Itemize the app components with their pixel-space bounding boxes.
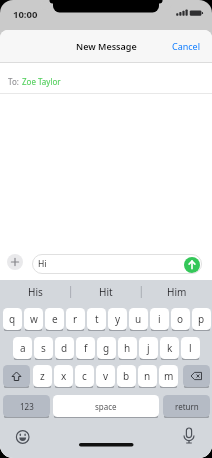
staticText: m (164, 369, 174, 383)
staticText: New Message (76, 40, 137, 52)
button[interactable]: q (3, 308, 22, 330)
staticText: u (135, 312, 142, 326)
staticText: g (103, 341, 110, 355)
button[interactable] (184, 257, 200, 273)
button[interactable]: His (0, 280, 70, 304)
staticText: h (124, 341, 131, 355)
button[interactable]: p (192, 308, 211, 330)
button[interactable]: g (97, 337, 116, 359)
staticText: e (52, 312, 58, 326)
button[interactable]: n (138, 365, 157, 387)
button[interactable]: v (96, 365, 115, 387)
button[interactable]: m (159, 365, 178, 387)
button[interactable]: 123 (3, 395, 50, 417)
staticText: w (30, 312, 38, 326)
staticText: c (82, 369, 87, 383)
button[interactable]: s (34, 337, 53, 359)
staticText: d (61, 341, 68, 355)
staticText: s (41, 341, 46, 355)
staticText: Him (167, 285, 187, 299)
staticText: l (189, 341, 192, 355)
staticText: x (61, 369, 67, 383)
button[interactable]: o (171, 308, 190, 330)
staticText: 123 (20, 401, 34, 412)
button[interactable] (183, 365, 210, 387)
button[interactable]: k (160, 337, 179, 359)
button[interactable]: c (75, 365, 94, 387)
staticText: n (144, 369, 151, 383)
staticText: f (84, 341, 88, 355)
button[interactable]: a (13, 337, 32, 359)
button[interactable]: space (53, 395, 159, 417)
staticText: v (103, 369, 109, 383)
staticText: return (175, 401, 199, 412)
staticText: b (123, 369, 130, 383)
button[interactable]: r (66, 308, 85, 330)
button[interactable] (7, 254, 23, 270)
staticText: space (95, 401, 117, 412)
staticText: r (73, 312, 78, 326)
staticText: Cancel (172, 40, 201, 52)
staticText: p (198, 312, 205, 326)
staticText: Hi (38, 258, 47, 270)
button[interactable]: Him (141, 280, 212, 304)
button[interactable]: f (76, 337, 95, 359)
staticText: 10:00 (13, 8, 38, 21)
staticText: Zoe Taylor (22, 76, 61, 87)
staticText: j (147, 341, 150, 355)
button[interactable]: Hi (32, 254, 202, 274)
button[interactable]: w (24, 308, 43, 330)
staticText: q (9, 312, 16, 326)
button[interactable]: b (117, 365, 136, 387)
staticText: i (158, 312, 161, 326)
staticText: His (28, 285, 43, 299)
button[interactable]: Hit (70, 280, 141, 304)
staticText: a (20, 341, 26, 355)
staticText: To: (8, 76, 19, 87)
button[interactable]: x (54, 365, 73, 387)
staticText: y (115, 312, 121, 326)
button[interactable]: h (118, 337, 137, 359)
button[interactable]: d (55, 337, 74, 359)
button[interactable]: z (33, 365, 52, 387)
staticText: Hit (99, 285, 113, 299)
button[interactable]: t (87, 308, 106, 330)
button[interactable]: u (129, 308, 148, 330)
button[interactable]: return (163, 395, 210, 417)
button[interactable]: j (139, 337, 158, 359)
button[interactable]: e (45, 308, 64, 330)
staticText: k (167, 341, 173, 355)
staticText: t (95, 312, 99, 326)
button[interactable]: l (181, 337, 200, 359)
button[interactable]: Cancel (172, 30, 212, 62)
staticText: z (40, 369, 45, 383)
staticText: o (177, 312, 184, 326)
button[interactable]: y (108, 308, 127, 330)
button[interactable] (3, 365, 30, 387)
button[interactable]: To: (0, 63, 212, 93)
button[interactable]: i (150, 308, 169, 330)
